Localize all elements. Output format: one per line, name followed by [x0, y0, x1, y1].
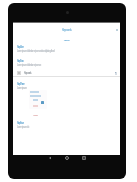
staticText: 1 [115, 72, 117, 76]
button[interactable]: More options [115, 28, 119, 32]
button[interactable]: Back [47, 155, 53, 161]
staticText: Lorem ipsum dolor sit amet, consectetur … [17, 49, 55, 53]
button[interactable]: Keywords [13, 68, 120, 77]
button[interactable]: Recent apps [81, 155, 87, 161]
button[interactable]: Home [64, 155, 70, 161]
button[interactable]: Step One [17, 45, 24, 49]
staticText: Keywords [13, 28, 120, 32]
button[interactable]: Cancel [33, 113, 38, 116]
staticText: Lorem ipsum do [17, 125, 29, 129]
staticText: This is an app [13, 38, 120, 41]
staticText: Keywords [24, 71, 32, 75]
button[interactable] [29, 90, 47, 109]
staticText: Lorem ipsum [17, 86, 27, 90]
button[interactable]: Step Two [17, 59, 24, 63]
staticText: Lorem ipsum dolor sit amet, consec [17, 63, 41, 67]
button[interactable]: Step Three [17, 82, 25, 86]
button[interactable]: Step Four [17, 121, 24, 125]
